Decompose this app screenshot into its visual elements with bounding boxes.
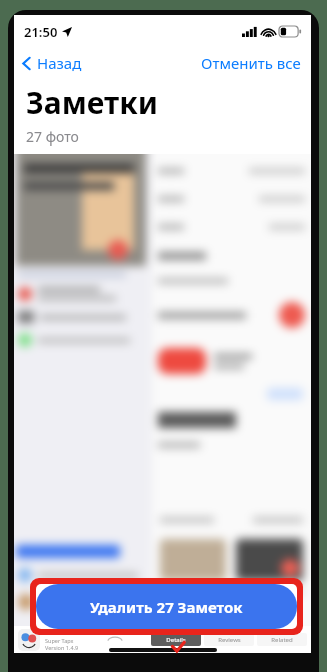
button[interactable]: Назад (14, 49, 90, 77)
staticText: Назад (37, 53, 82, 73)
staticText: Удалить 27 Заметок (90, 597, 243, 617)
staticText: 27 фото (26, 127, 79, 146)
staticText: Related (271, 636, 293, 644)
staticText: Заметки (26, 82, 158, 123)
button[interactable]: Reviews (204, 633, 254, 646)
button[interactable]: Details (151, 633, 201, 646)
staticText: Reviews (218, 636, 241, 644)
button[interactable]: Удалить 27 Заметок (36, 584, 297, 629)
staticText: Details (166, 636, 186, 644)
staticText: 21:50 (24, 23, 58, 41)
button[interactable]: Related (257, 633, 307, 646)
staticText: Super Tapx (45, 637, 74, 644)
staticText: Love Balls (45, 629, 75, 637)
button[interactable]: Отменить все (191, 49, 311, 77)
staticText: Version 1.4.9 (45, 644, 79, 651)
staticText: Отменить все (201, 53, 301, 73)
